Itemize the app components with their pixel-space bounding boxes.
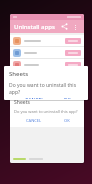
staticText: Sheets [14,99,30,106]
button[interactable]: Share [59,21,70,32]
staticText: Uninstall apps [14,23,55,31]
staticText: CANCEL [25,97,44,99]
button[interactable] [10,83,84,94]
button[interactable]: CANCEL [23,96,46,100]
staticText: OK [64,118,70,123]
staticText: Do you want to uninstall this app? [14,109,78,114]
button[interactable] [10,59,84,70]
button[interactable]: More options [70,22,80,32]
staticText: Sheets [9,70,29,78]
button[interactable]: OK [62,117,72,124]
button[interactable]: CANCEL [24,117,44,124]
button[interactable] [65,50,81,56]
button[interactable] [10,35,84,46]
staticText: Do you want to uninstall this app? [9,82,83,96]
button[interactable] [10,47,84,58]
button[interactable] [65,38,81,44]
staticText: OK [63,97,71,99]
button[interactable]: OK [61,96,73,100]
button[interactable] [65,62,81,68]
staticText: CANCEL [26,118,42,123]
button[interactable] [65,86,81,92]
button[interactable] [10,71,84,82]
